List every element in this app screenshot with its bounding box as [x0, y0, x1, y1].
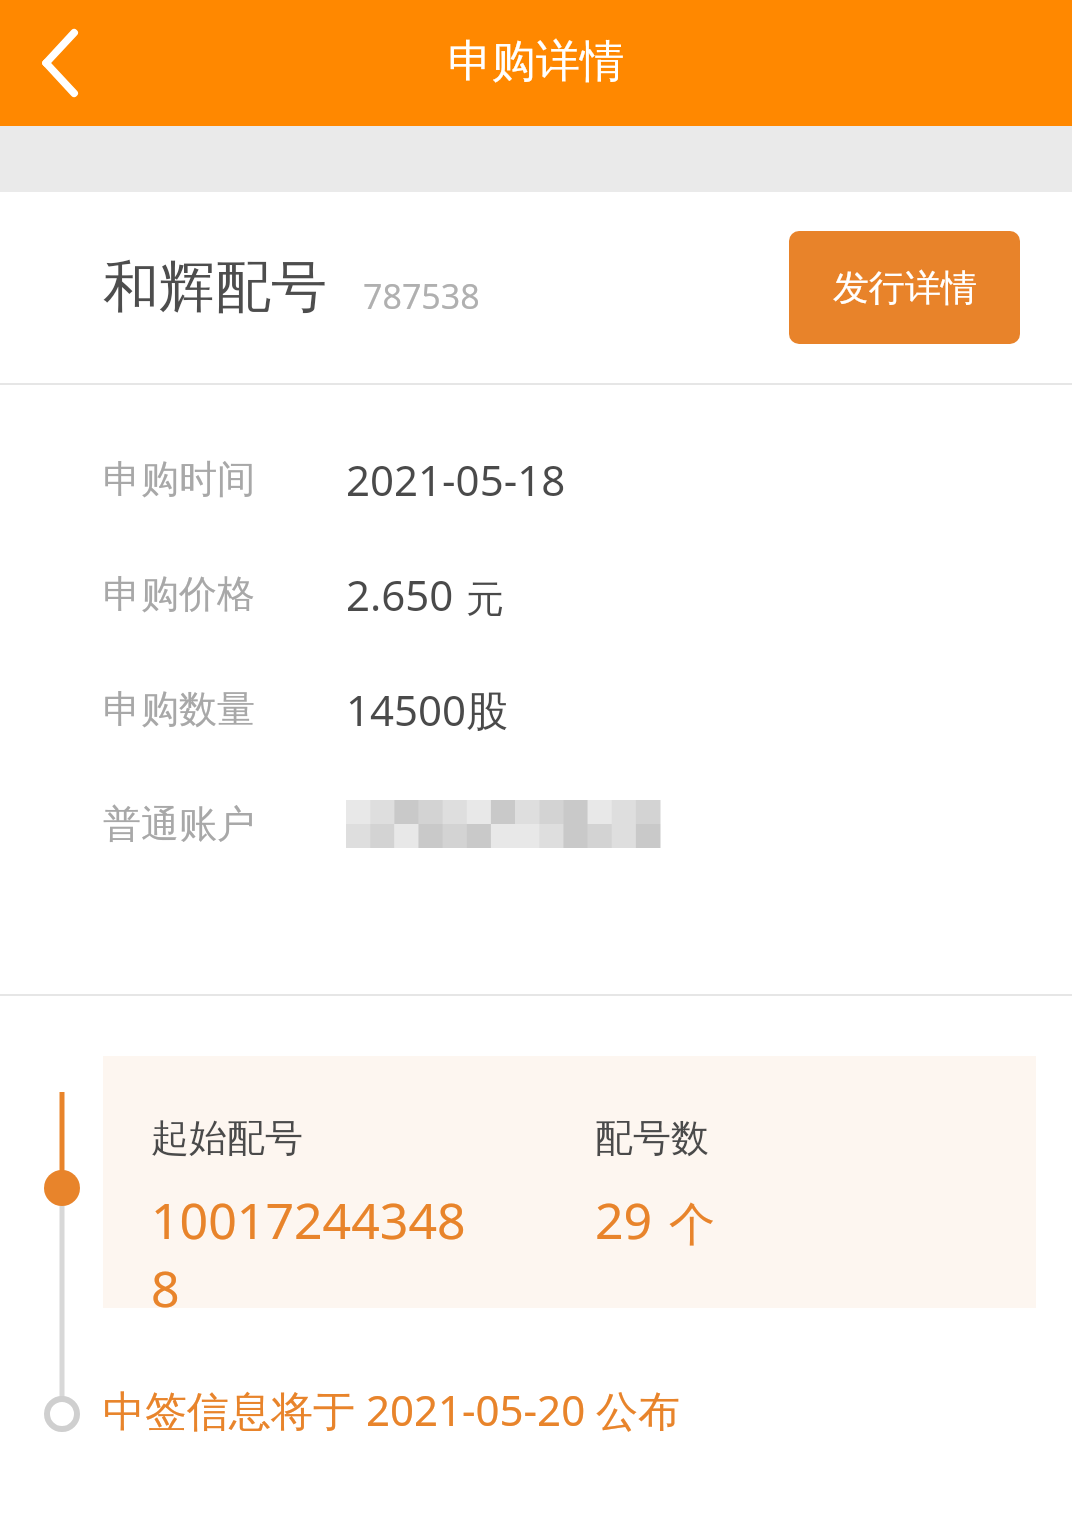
- staticText: 配号数: [595, 1114, 709, 1162]
- staticText: 和辉配号: [103, 252, 327, 323]
- staticText: 元: [466, 575, 504, 623]
- button[interactable]: 起始配号: [103, 1056, 1036, 1308]
- button[interactable]: Back: [6, 8, 116, 118]
- staticText: 787538: [363, 273, 480, 319]
- staticText: 起始配号: [151, 1114, 303, 1162]
- staticText: 29: [595, 1186, 653, 1254]
- staticText: 中签信息将于 2021-05-20 公布: [103, 1381, 681, 1438]
- staticText: 申购价格: [103, 570, 255, 618]
- staticText: 申购详情: [448, 34, 624, 89]
- staticText: 个: [669, 1196, 715, 1254]
- staticText: 发行详情: [833, 265, 977, 310]
- button[interactable]: 中签信息将于 2021-05-20 公布: [103, 1381, 681, 1438]
- staticText: 14500股: [346, 681, 509, 738]
- staticText: 普通账户: [103, 800, 255, 848]
- staticText: 2.650: [346, 566, 454, 623]
- staticText: 100172443488: [151, 1186, 493, 1308]
- button[interactable]: 发行详情: [789, 231, 1020, 344]
- staticText: 2021-05-18: [346, 451, 566, 508]
- staticText: 申购数量: [103, 685, 255, 733]
- staticText: 申购时间: [103, 455, 255, 503]
